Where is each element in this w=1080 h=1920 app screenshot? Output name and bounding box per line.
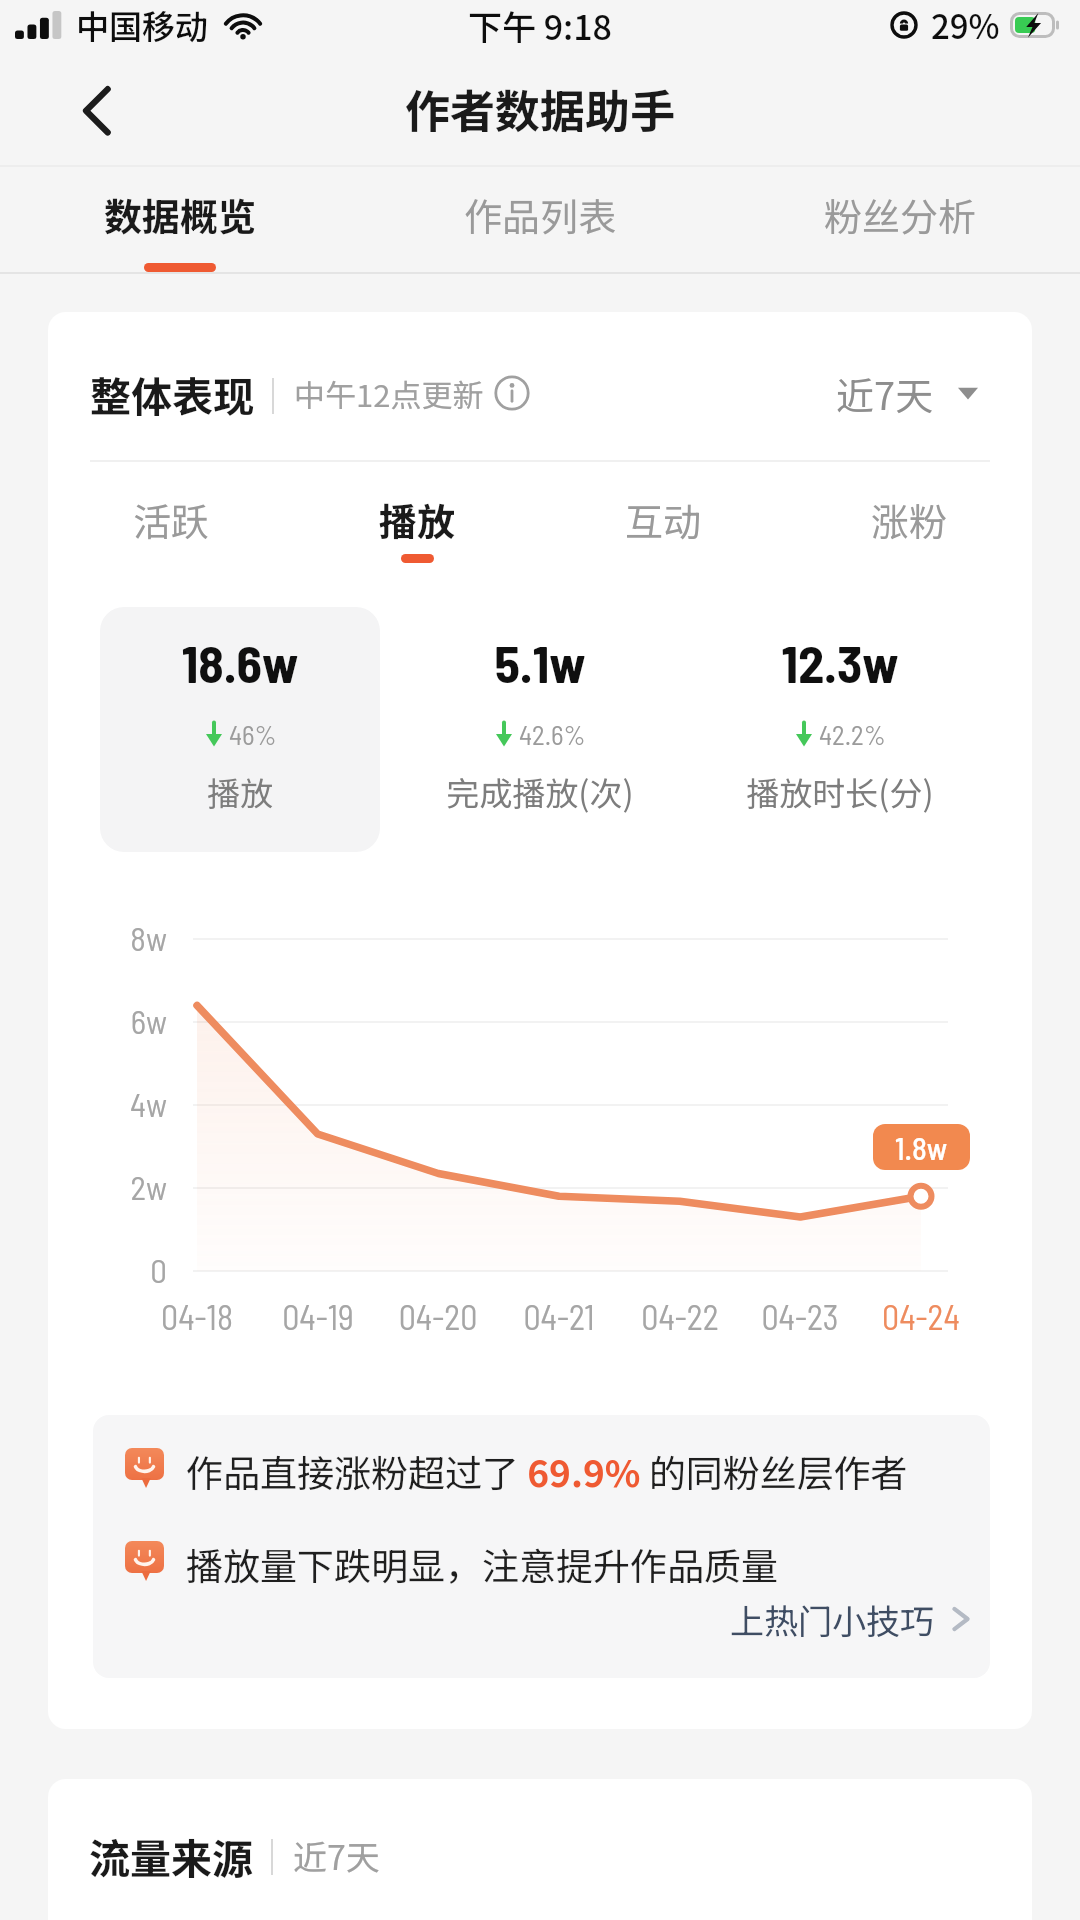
staticText: 互动	[625, 492, 702, 547]
staticText: 中国移动	[76, 1, 208, 49]
staticText: 04-24	[851, 1296, 991, 1337]
button[interactable]: 涨粉	[786, 466, 1032, 576]
staticText: 下午 9:18	[468, 1, 612, 50]
staticText: 5.1w	[400, 631, 680, 693]
button[interactable]: 互动	[540, 466, 786, 576]
button[interactable]: 活跃	[48, 466, 294, 576]
staticText: 粉丝分析	[824, 187, 977, 242]
staticText: 中午12点更新	[294, 371, 484, 416]
staticText: 作品列表	[464, 187, 617, 242]
staticText: 涨粉	[871, 492, 948, 547]
staticText: 数据概览	[104, 187, 257, 242]
staticText: 6w	[87, 1001, 167, 1041]
button[interactable]: 18.6w	[100, 607, 380, 852]
staticText: 04-18	[127, 1296, 267, 1337]
button[interactable]: 上热门小技巧	[730, 1595, 972, 1643]
staticText: 0	[87, 1250, 167, 1290]
staticText: 8w	[87, 918, 167, 958]
button[interactable]: 12.3w	[700, 607, 980, 852]
button[interactable]: 粉丝分析	[720, 168, 1080, 280]
button[interactable]: Back	[58, 73, 128, 143]
staticText: 近7天	[293, 1831, 380, 1880]
staticText: 04-22	[610, 1296, 750, 1337]
button[interactable]: 5.1w	[400, 607, 680, 852]
staticText: 42.2%	[819, 718, 886, 750]
staticText: 上热门小技巧	[730, 1595, 934, 1643]
staticText: 12.3w	[700, 631, 980, 693]
staticText: 整体表现	[90, 364, 254, 423]
staticText: 活跃	[133, 492, 210, 547]
staticText: 46%	[229, 718, 277, 750]
staticText: 流量来源	[89, 1826, 253, 1885]
staticText: 2w	[87, 1167, 167, 1207]
staticText: 近7天	[836, 366, 934, 421]
staticText: 18.6w	[100, 631, 380, 693]
staticText: 42.6%	[519, 718, 586, 750]
staticText: 4w	[87, 1084, 167, 1124]
staticText: 04-21	[489, 1296, 629, 1337]
staticText: 04-19	[248, 1296, 388, 1337]
staticText: 播放时长(分)	[700, 768, 980, 816]
staticText: 作者数据助手	[405, 76, 676, 141]
staticText: 播放量下跌明显，注意提升作品质量	[186, 1537, 778, 1585]
staticText: 29%	[931, 1, 1000, 49]
staticText: 1.8w	[895, 1129, 948, 1166]
button[interactable]: 数据概览	[0, 168, 360, 280]
staticText: 作品直接涨粉超过了 69.9% 的同粉丝层作者	[186, 1444, 908, 1492]
button[interactable]: 作品列表	[360, 168, 720, 280]
staticText: 04-23	[730, 1296, 870, 1337]
button[interactable]: 播放	[294, 466, 540, 576]
staticText: 播放	[100, 768, 380, 816]
staticText: 播放	[379, 492, 456, 547]
staticText: 04-20	[368, 1296, 508, 1337]
staticText: 完成播放(次)	[400, 768, 680, 816]
button[interactable]: 近7天	[836, 358, 978, 428]
